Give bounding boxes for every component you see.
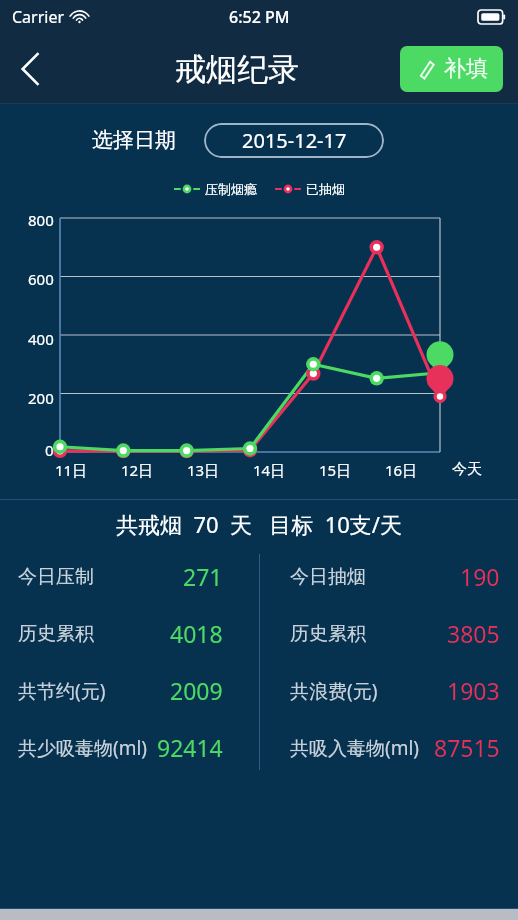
staticText: 200: [28, 388, 54, 408]
staticText: 戒烟纪录: [175, 50, 299, 89]
staticText: 今日抽烟: [290, 565, 366, 589]
staticText: 87515: [434, 732, 500, 763]
staticText: 13日: [187, 460, 220, 480]
staticText: 共节约(元): [18, 678, 106, 704]
button[interactable]: 共浪费(元): [259, 662, 518, 719]
staticText: 190: [460, 561, 500, 592]
button[interactable]: 2015-12-17: [204, 123, 384, 158]
button[interactable]: 历史累积: [0, 605, 259, 662]
staticText: 今日压制: [18, 565, 94, 589]
staticText: 历史累积: [290, 622, 366, 646]
staticText: 6:52 PM: [229, 6, 290, 28]
button[interactable]: 历史累积: [259, 605, 518, 662]
staticText: 0: [45, 440, 54, 460]
staticText: 已抽烟: [306, 181, 345, 197]
staticText: 1903: [447, 675, 500, 706]
staticText: 12日: [121, 460, 154, 480]
button[interactable]: Back: [0, 34, 62, 103]
button[interactable]: 共吸入毒物(ml): [259, 719, 518, 776]
staticText: 92414: [157, 732, 223, 763]
staticText: 4018: [170, 618, 223, 649]
staticText: 共吸入毒物(ml): [290, 735, 420, 761]
staticText: 2015-12-17: [242, 127, 347, 154]
staticText: 800: [28, 210, 54, 230]
staticText: 历史累积: [18, 622, 94, 646]
staticText: 14日: [253, 460, 286, 480]
button[interactable]: 补填: [400, 46, 503, 92]
staticText: 共浪费(元): [290, 678, 378, 704]
button[interactable]: 共节约(元): [0, 662, 259, 719]
staticText: 2009: [170, 675, 223, 706]
staticText: 今天: [452, 460, 482, 479]
staticText: 共少吸毒物(ml): [18, 735, 148, 761]
button[interactable]: 共少吸毒物(ml): [0, 719, 259, 776]
staticText: 15日: [319, 460, 352, 480]
staticText: 16日: [385, 460, 418, 480]
staticText: 3805: [447, 618, 500, 649]
button[interactable]: 今日抽烟: [259, 548, 518, 605]
staticText: 补填: [444, 55, 488, 83]
button[interactable]: 今日压制: [0, 548, 259, 605]
staticText: 400: [28, 329, 54, 349]
staticText: Carrier: [12, 6, 65, 28]
staticText: 压制烟瘾: [205, 181, 257, 197]
staticText: 11日: [55, 460, 88, 480]
staticText: 共戒烟 70 天 目标 10支/天: [116, 509, 403, 539]
staticText: 选择日期: [92, 127, 176, 153]
staticText: 600: [28, 269, 54, 289]
staticText: 271: [183, 561, 223, 592]
